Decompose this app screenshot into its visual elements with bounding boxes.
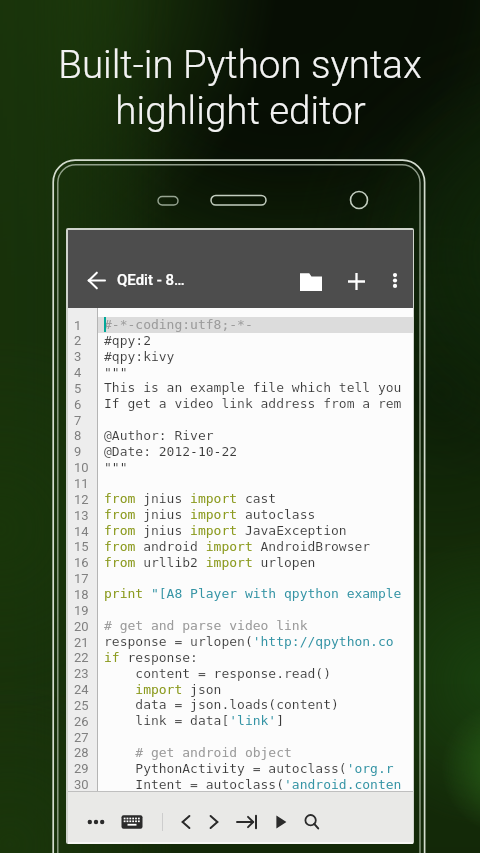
staticText: import json <box>104 682 222 697</box>
button[interactable]: Back <box>76 260 116 300</box>
staticText: from urllib2 import urlopen <box>104 555 316 570</box>
staticText: 29 <box>74 761 89 776</box>
staticText: 13 <box>74 508 89 523</box>
staticText: 1 <box>74 318 82 333</box>
staticText: 23 <box>74 666 89 681</box>
button[interactable]: Next <box>198 806 230 838</box>
staticText: QEdit - 8… <box>117 271 185 289</box>
staticText: # get android object <box>104 745 292 760</box>
button[interactable]: Keyboard <box>117 807 147 837</box>
staticText: from jnius import cast <box>104 491 277 506</box>
staticText: from jnius import autoclass <box>104 507 316 522</box>
staticText: 25 <box>74 698 89 713</box>
button[interactable]: Run <box>266 807 296 837</box>
staticText: 16 <box>74 555 89 570</box>
staticText: print "[A8 Player with qpython example <box>104 586 402 601</box>
staticText: 18 <box>74 587 89 602</box>
staticText: #-*-coding:utf8;-*- <box>104 317 253 332</box>
staticText: link = data['link'] <box>104 713 285 728</box>
staticText: response = urlopen('http://qpython.co <box>104 634 394 649</box>
staticText: """ <box>104 460 128 475</box>
staticText: 2 <box>74 333 82 348</box>
staticText: 7 <box>74 413 82 428</box>
staticText: from android import AndroidBrowser <box>104 539 371 554</box>
staticText: from jnius import JavaException <box>104 523 347 538</box>
staticText: 14 <box>74 524 89 539</box>
staticText: 27 <box>74 730 89 745</box>
staticText: 20 <box>74 619 89 634</box>
staticText: # get and parse video link <box>104 618 308 633</box>
staticText: @Date: 2012-10-22 <box>104 444 238 459</box>
staticText: 28 <box>74 745 89 760</box>
staticText: 5 <box>74 381 82 396</box>
button[interactable]: Previous <box>170 806 202 838</box>
staticText: 3 <box>74 349 82 364</box>
staticText: content = response.read() <box>104 666 331 681</box>
staticText: 10 <box>74 460 89 475</box>
staticText: 17 <box>74 571 89 586</box>
staticText: 22 <box>74 650 89 665</box>
staticText: 21 <box>74 635 89 650</box>
staticText: 15 <box>74 539 89 554</box>
staticText: 6 <box>74 397 82 412</box>
staticText: 24 <box>74 682 89 697</box>
button[interactable]: Search <box>297 807 327 837</box>
button[interactable]: More <box>81 807 111 837</box>
staticText: PythonActivity = autoclass('org.r <box>104 761 394 776</box>
button[interactable]: Open folder <box>289 259 333 303</box>
staticText: Built-in Python syntax <box>58 42 422 87</box>
button[interactable]: More options <box>375 260 414 300</box>
staticText: Intent = autoclass('android.conten <box>104 777 402 792</box>
staticText: 4 <box>74 365 82 380</box>
staticText: @Author: River <box>104 428 214 443</box>
staticText: if response: <box>104 650 198 665</box>
button[interactable]: New file <box>334 259 378 303</box>
staticText: 30 <box>74 777 89 792</box>
staticText: """ <box>104 365 128 380</box>
staticText: 8 <box>74 428 82 443</box>
staticText: If get a video link address from a rem <box>104 396 402 411</box>
staticText: 12 <box>74 492 89 507</box>
staticText: data = json.loads(content) <box>104 697 339 712</box>
staticText: #qpy:2 <box>104 333 151 348</box>
staticText: 26 <box>74 714 89 729</box>
staticText: This is an example file which tell you <box>104 380 402 395</box>
staticText: 19 <box>74 603 89 618</box>
staticText: 11 <box>74 476 89 491</box>
staticText: highlight editor <box>115 88 366 133</box>
staticText: #qpy:kivy <box>104 349 175 364</box>
staticText: 9 <box>74 444 82 459</box>
button[interactable]: Indent <box>230 805 264 839</box>
